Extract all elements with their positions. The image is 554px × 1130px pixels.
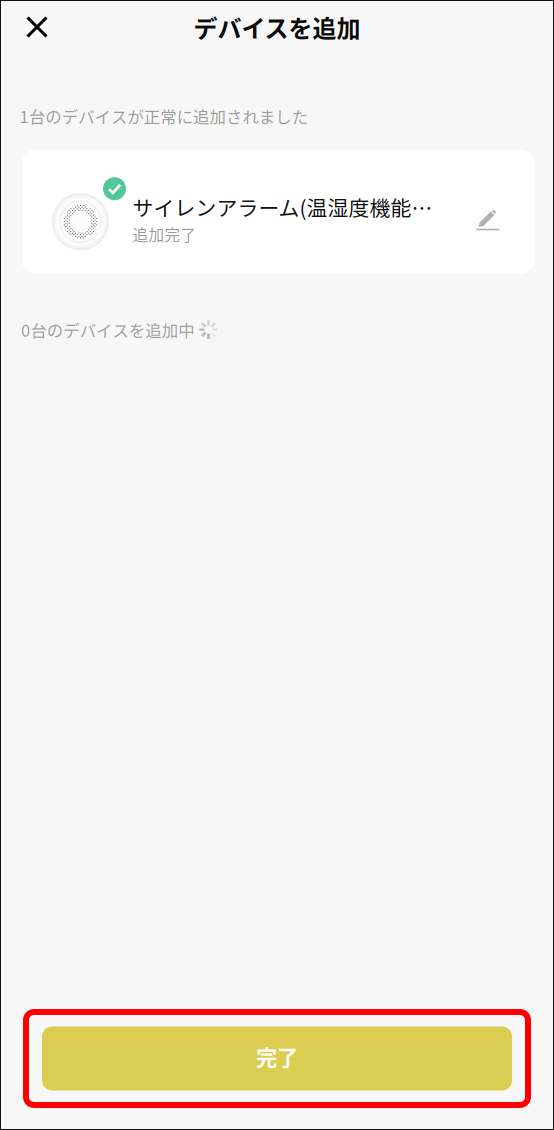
button[interactable]: Close bbox=[14, 4, 60, 50]
staticText: 0台のデバイスを追加中 bbox=[21, 318, 194, 341]
staticText: 完了 bbox=[256, 1041, 298, 1072]
button[interactable]: 完了 bbox=[42, 1026, 512, 1090]
staticText: サイレンアラーム(温湿度機能… bbox=[132, 192, 432, 222]
staticText: 追加完了 bbox=[132, 223, 196, 246]
staticText: 1台のデバイスが正常に追加されました bbox=[19, 104, 308, 128]
button[interactable]: Rename device bbox=[466, 198, 510, 242]
staticText: デバイスを追加 bbox=[193, 10, 360, 44]
